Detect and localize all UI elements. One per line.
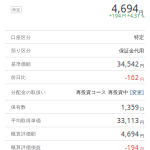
staticText: 円 <box>140 120 144 125</box>
staticText: 円 <box>140 133 144 138</box>
staticText: 分配金の取扱い <box>11 89 46 95</box>
staticText: 預り区分 <box>11 48 31 54</box>
staticText: 円 <box>140 63 144 68</box>
staticText: 保証金代用 <box>119 47 144 54</box>
button[interactable]: [変更] <box>130 89 144 96</box>
button[interactable]: 特定 <box>11 6 21 13</box>
staticText: 再投資コース <box>76 89 106 96</box>
staticText: +194 <box>109 13 121 19</box>
staticText: 1,359 <box>121 103 139 111</box>
staticText: 特定 <box>134 34 144 40</box>
staticText: 概算評価額 <box>11 131 36 137</box>
staticText: 4,694 <box>111 2 138 15</box>
staticText: 円 <box>140 77 144 82</box>
staticText: 基準価額 <box>11 61 31 67</box>
staticText: 特定 <box>12 7 20 12</box>
staticText: % <box>141 13 144 19</box>
staticText: [変更] <box>130 89 144 96</box>
staticText: 口 <box>140 106 144 111</box>
staticText: 4,694 <box>121 130 139 138</box>
staticText: 保有数 <box>11 104 26 110</box>
staticText: +4.31 <box>127 13 140 19</box>
staticText: 平均取得単価 <box>11 118 41 124</box>
staticText: 前日比 <box>11 74 26 80</box>
staticText: 円 <box>122 13 126 18</box>
staticText: -194 <box>125 143 139 150</box>
staticText: 概算評価損益 <box>11 144 41 150</box>
staticText: 口座区分 <box>11 34 31 40</box>
staticText: 円 <box>140 147 144 150</box>
staticText: -162 <box>125 73 139 82</box>
staticText: 34,542 <box>117 60 139 68</box>
staticText: 円 <box>139 10 144 15</box>
staticText: 再投資中 <box>108 89 128 96</box>
staticText: 33,113 <box>117 116 139 125</box>
